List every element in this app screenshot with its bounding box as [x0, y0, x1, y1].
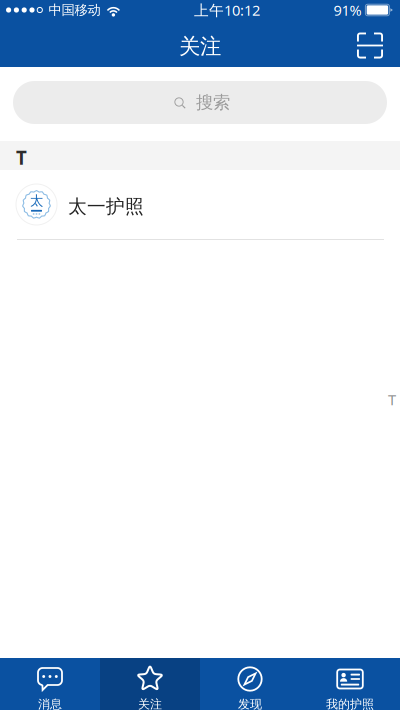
staticText: T	[388, 390, 396, 409]
staticText: 关注	[179, 33, 221, 60]
button[interactable]: 搜索	[13, 81, 387, 124]
staticText: 太	[30, 192, 43, 209]
staticText: 91%	[333, 0, 361, 20]
staticText: 中国移动	[48, 2, 100, 18]
staticText: 我的护照	[326, 697, 374, 710]
button[interactable]: 我的护照	[300, 658, 400, 710]
staticText: 上午10:12	[194, 0, 260, 20]
staticText: 搜索	[196, 92, 230, 113]
button[interactable]: 太	[0, 170, 400, 240]
button[interactable]: 关注	[100, 658, 200, 710]
button[interactable]: 扫一扫	[346, 23, 394, 67]
staticText: 关注	[138, 697, 162, 710]
staticText: T	[16, 145, 27, 170]
staticText: 发现	[238, 697, 262, 710]
staticText: 太一护照	[68, 195, 144, 218]
button[interactable]: 发现	[200, 658, 300, 710]
staticText: 消息	[38, 697, 62, 710]
button[interactable]: 消息	[0, 658, 100, 710]
